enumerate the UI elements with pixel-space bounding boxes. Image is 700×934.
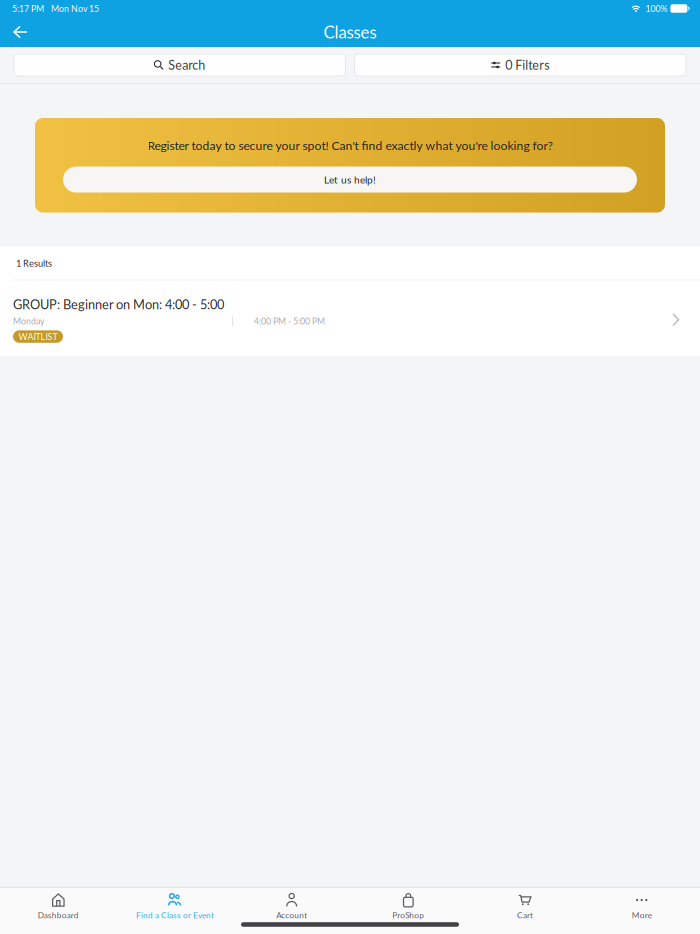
staticText: Let us help! [324, 173, 376, 186]
staticText: ProShop [392, 910, 424, 920]
staticText: Dashboard [38, 910, 79, 920]
button[interactable]: Let us help! [63, 167, 637, 193]
button[interactable]: Dashboard [0, 886, 117, 923]
staticText: Register today to secure your spot! Can'… [147, 138, 552, 153]
button[interactable]: GROUP: Beginner on Mon: 4:00 - 5:00 [0, 281, 700, 356]
button[interactable]: Account [233, 886, 350, 923]
staticText: Monday [13, 316, 44, 326]
button[interactable]: ProShop [350, 886, 467, 923]
button[interactable]: Find a Class or Event [117, 886, 233, 923]
button[interactable]: 0 Filters [354, 54, 686, 76]
staticText: 4:00 PM - 5:00 PM [254, 316, 325, 326]
staticText: 0 Filters [505, 57, 549, 72]
button[interactable]: More [583, 886, 700, 923]
staticText: Mon Nov 15 [51, 3, 99, 14]
staticText: More [632, 910, 652, 920]
staticText: 100% [645, 3, 667, 14]
staticText: Classes [323, 22, 376, 42]
button[interactable]: Back [0, 20, 37, 44]
staticText: Account [276, 910, 307, 920]
staticText: GROUP: Beginner on Mon: 4:00 - 5:00 [13, 297, 224, 312]
staticText: 1 Results [16, 257, 52, 269]
staticText: Find a Class or Event [136, 910, 214, 920]
staticText: 5:17 PM [12, 3, 44, 14]
button[interactable]: Search [14, 54, 345, 76]
staticText: Cart [517, 910, 533, 920]
staticText: WAITLIST [18, 331, 57, 342]
staticText: Search [168, 57, 205, 72]
button[interactable]: Cart [467, 886, 583, 923]
